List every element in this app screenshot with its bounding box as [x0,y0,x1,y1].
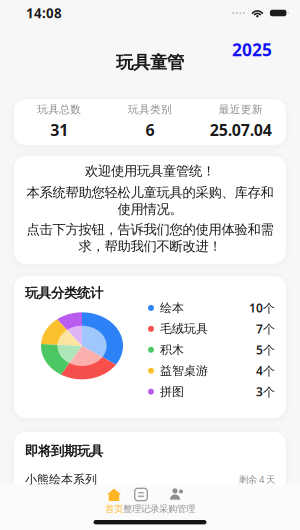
staticText: 10个 [249,300,275,316]
staticText: 采购管理 [159,503,195,515]
staticText: 小熊绘本系列 [25,472,97,487]
staticText: 玩具分类统计 [25,285,103,301]
staticText: 3个 [256,384,275,400]
button[interactable]: 采购管理 [159,484,195,514]
staticText: 剩余 4 天 [239,473,275,486]
staticText: 2025 [232,38,272,61]
staticText: 毛绒玩具 [160,321,208,336]
staticText: 首页 [105,503,123,515]
staticText: 点击下方按钮，告诉我们您的使用体验和需 [26,221,273,238]
staticText: 6 [145,119,154,140]
staticText: 7个 [256,321,275,337]
staticText: 欢迎使用玩具童管统！ [85,163,215,179]
staticText: 玩具类别 [128,103,172,116]
staticText: 绘本 [160,300,184,315]
staticText: 31 [50,119,68,140]
staticText: 本系统帮助您轻松儿童玩具的采购、库存和 [26,184,273,201]
staticText: 求，帮助我们不断改进！ [78,238,221,255]
staticText: 使用情况。 [117,201,182,217]
staticText: 14:08 [26,4,62,22]
button[interactable]: 整理记录 [123,484,159,514]
staticText: 4个 [256,363,275,379]
staticText: 最近更新 [219,103,263,116]
button[interactable]: 首页 [105,484,123,514]
staticText: 玩具童管 [116,52,184,73]
staticText: 整理记录 [123,503,159,515]
staticText: 即将到期玩具 [25,443,103,459]
staticText: 玩具总数 [37,103,81,116]
staticText: 拼图 [160,384,184,399]
staticText: 25.07.04 [210,119,272,140]
staticText: 5个 [256,342,275,358]
staticText: 益智桌游 [160,363,208,378]
staticText: 积木 [160,342,184,357]
button[interactable]: 2025 [230,37,274,62]
